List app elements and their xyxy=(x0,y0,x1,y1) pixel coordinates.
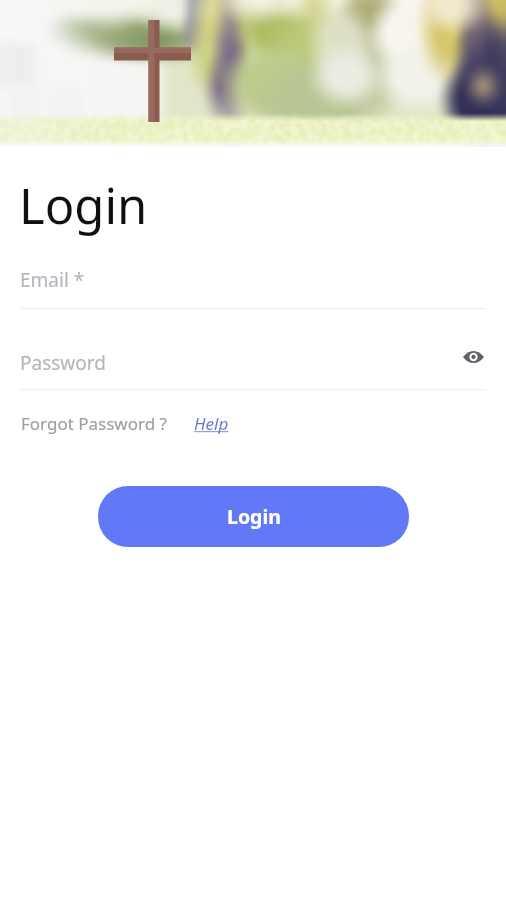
staticText: Login xyxy=(19,172,148,239)
staticText: Login xyxy=(227,503,281,530)
button[interactable]: Show password xyxy=(460,344,486,370)
button[interactable]: Forgot Password ? xyxy=(21,412,167,435)
button[interactable]: Password xyxy=(20,350,486,390)
staticText: Email * xyxy=(20,267,85,293)
staticText: Help xyxy=(194,412,229,435)
button[interactable]: Help xyxy=(194,412,229,435)
staticText: Password xyxy=(20,350,106,376)
button[interactable]: Email * xyxy=(20,267,486,309)
staticText: Forgot Password ? xyxy=(21,412,167,435)
button[interactable]: Login xyxy=(98,486,409,547)
